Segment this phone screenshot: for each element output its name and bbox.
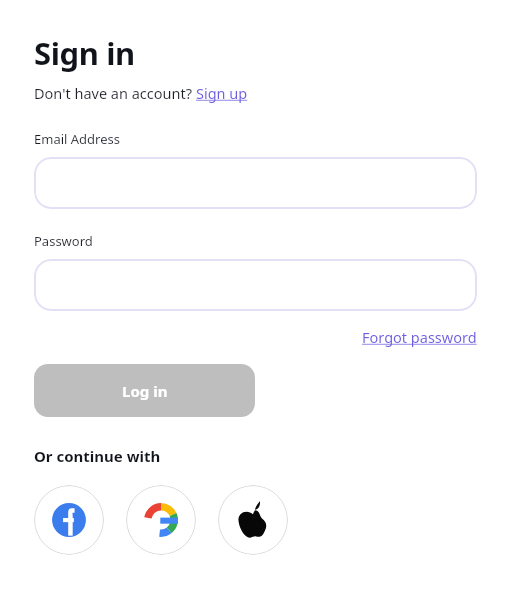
button[interactable]: Sign in with Facebook bbox=[34, 485, 104, 555]
staticText: Log in bbox=[122, 381, 168, 401]
button[interactable]: Sign up bbox=[196, 83, 248, 103]
button[interactable]: Sign in with Google bbox=[126, 485, 196, 555]
staticText: Or continue with bbox=[34, 446, 161, 466]
staticText: Don't have an account? bbox=[34, 83, 196, 103]
staticText: Sign in bbox=[34, 32, 135, 74]
button[interactable]: Forgot password bbox=[362, 327, 477, 347]
staticText: Forgot password bbox=[362, 327, 477, 347]
staticText: Password bbox=[34, 232, 93, 250]
button[interactable]: Email Address field bbox=[34, 157, 477, 209]
staticText: Email Address bbox=[34, 130, 120, 148]
button[interactable]: Password field bbox=[34, 259, 477, 311]
staticText: Sign up bbox=[196, 83, 248, 103]
button[interactable]: Log in bbox=[34, 364, 255, 417]
button[interactable]: Sign in with Apple bbox=[218, 485, 288, 555]
